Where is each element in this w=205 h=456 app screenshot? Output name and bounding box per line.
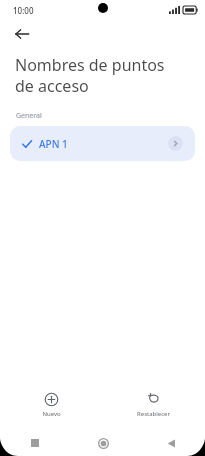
staticText: General: [16, 111, 205, 121]
staticText: Restablecer: [137, 410, 170, 418]
button[interactable]: Back: [159, 431, 183, 455]
button[interactable]: APN 1: [10, 126, 195, 161]
button[interactable]: Home: [91, 431, 115, 455]
button[interactable]: Edit APN 1: [168, 136, 183, 151]
button[interactable]: Recents: [23, 431, 47, 455]
button[interactable]: Reset: [127, 389, 180, 421]
button[interactable]: Back: [8, 20, 36, 48]
staticText: APN 1: [39, 137, 68, 151]
button[interactable]: New APN: [32, 389, 71, 421]
staticText: Nuevo: [42, 410, 61, 418]
staticText: Nombres de puntos de acceso: [15, 54, 187, 97]
staticText: 10:00: [13, 5, 34, 16]
